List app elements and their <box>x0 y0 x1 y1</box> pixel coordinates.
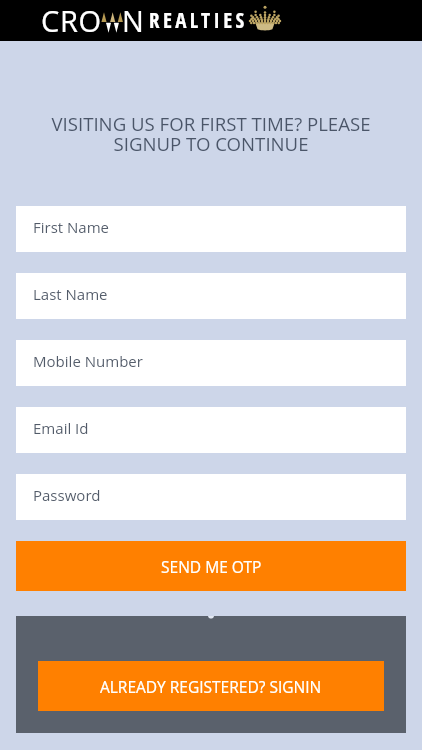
button[interactable]: Last Name <box>16 273 406 319</box>
staticText: N <box>122 1 144 40</box>
button[interactable]: Password <box>16 474 406 520</box>
button[interactable]: SEND ME OTP <box>16 541 406 591</box>
staticText: SEND ME OTP <box>161 556 262 577</box>
staticText: Password <box>33 485 101 505</box>
button[interactable]: ALREADY REGISTERED? SIGNIN <box>38 661 384 711</box>
button[interactable]: Email Id <box>16 407 406 453</box>
staticText: ALREADY REGISTERED? SIGNIN <box>100 676 322 697</box>
staticText: First Name <box>33 217 110 237</box>
staticText: CRO <box>41 1 102 40</box>
staticText: REALTIES <box>149 6 248 35</box>
staticText: Mobile Number <box>33 351 143 371</box>
button[interactable]: Mobile Number <box>16 340 406 386</box>
staticText: Last Name <box>33 284 108 304</box>
staticText: VISITING US FOR FIRST TIME? PLEASE SIGNU… <box>24 111 398 156</box>
staticText: Email Id <box>33 418 89 438</box>
button[interactable]: First Name <box>16 206 406 252</box>
